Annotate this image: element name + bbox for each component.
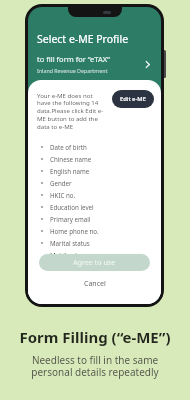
staticText: Date of birth <box>50 143 87 151</box>
button[interactable]: Agree to use <box>39 254 150 271</box>
staticText: HKIC no. <box>50 191 76 199</box>
staticText: Agree to use <box>73 258 116 268</box>
staticText: Chinese name <box>50 155 92 163</box>
staticText: Form Filling (“e-ME”) <box>19 327 171 347</box>
staticText: Gender <box>50 179 72 187</box>
staticText: Your e-ME does not have the following 14… <box>37 91 107 131</box>
button[interactable]: Edit e-ME <box>112 90 154 108</box>
other: Open e-ME profile <box>141 58 153 70</box>
button[interactable]: Cancel <box>70 277 120 291</box>
staticText: Home phone no. <box>50 227 99 235</box>
staticText: Education level <box>50 203 94 211</box>
staticText: to fill form for “eTAX” <box>37 54 110 64</box>
staticText: Inland Revenue Department <box>37 67 108 74</box>
button[interactable]: to fill form for “eTAX” <box>37 54 153 74</box>
staticText: Cancel <box>84 279 106 289</box>
staticText: Primary email <box>50 215 91 223</box>
staticText: Office phone no. <box>50 263 99 271</box>
staticText: Marital status <box>50 239 90 247</box>
staticText: Edit e-ME <box>120 95 146 103</box>
staticText: English name <box>50 167 90 175</box>
staticText: Select e-ME Profile <box>37 32 129 46</box>
staticText: Mobile phone no. <box>50 251 101 259</box>
staticText: Needless to fill in the same personal de… <box>31 353 159 379</box>
